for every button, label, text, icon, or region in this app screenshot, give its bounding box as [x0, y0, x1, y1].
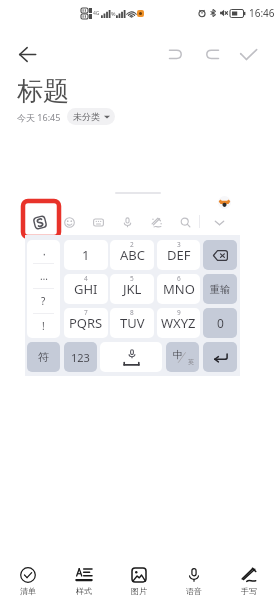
button[interactable]: Enter — [203, 342, 237, 372]
button[interactable]: Account avatar — [218, 196, 231, 209]
staticText: PQRS — [69, 314, 103, 332]
staticText: 1 — [82, 246, 90, 264]
button[interactable]: 123 — [64, 342, 97, 372]
staticText: 清单 — [20, 586, 36, 596]
button[interactable]: ， — [27, 240, 60, 263]
button[interactable]: 6 — [157, 274, 200, 304]
button[interactable]: 1 — [64, 240, 108, 270]
button[interactable]: … — [27, 264, 60, 288]
staticText: ? — [41, 294, 46, 308]
staticText: 未分类 — [73, 111, 100, 122]
button[interactable]: Handwriting — [145, 211, 167, 233]
button[interactable]: 4 — [64, 274, 108, 304]
button[interactable]: Done — [231, 37, 265, 71]
staticText: 6 — [177, 274, 181, 283]
staticText: 标题 — [17, 75, 69, 108]
staticText: ABC — [120, 246, 145, 264]
button[interactable]: Space — [100, 342, 162, 372]
staticText: 重输 — [210, 283, 230, 296]
staticText: 4 — [84, 274, 88, 283]
staticText: 123 — [71, 350, 90, 365]
staticText: TUV — [120, 314, 145, 332]
staticText: 语音 — [186, 586, 202, 596]
button[interactable]: Backspace — [203, 240, 237, 270]
staticText: ， — [39, 245, 49, 258]
staticText: 9 — [177, 308, 181, 317]
button[interactable]: 9 — [157, 308, 200, 338]
button[interactable]: 图片 — [111, 563, 166, 600]
button[interactable]: Input method — [29, 211, 51, 233]
button[interactable]: Emoji — [58, 211, 80, 233]
staticText: GHI — [74, 280, 98, 298]
button[interactable]: Collapse keyboard — [208, 211, 230, 233]
staticText: 0 — [217, 315, 224, 331]
button[interactable]: 未分类 — [67, 108, 115, 125]
staticText: 样式 — [76, 586, 92, 596]
staticText: 今天 16:45 — [17, 111, 61, 123]
button[interactable]: 8 — [110, 308, 154, 338]
staticText: 英 — [188, 358, 194, 366]
button[interactable]: 7 — [64, 308, 108, 338]
button[interactable]: Switch language — [166, 342, 199, 372]
button[interactable]: 清单 — [0, 563, 56, 600]
staticText: 手写 — [241, 586, 257, 596]
staticText: 16:46 — [249, 6, 275, 20]
staticText: JKL — [123, 280, 142, 298]
button[interactable]: 0 — [203, 308, 237, 338]
staticText: 3 — [177, 240, 181, 249]
button[interactable]: Undo — [158, 37, 192, 71]
staticText: 2 — [130, 240, 134, 249]
staticText: 5 — [130, 274, 134, 283]
staticText: DEF — [167, 246, 191, 264]
button[interactable]: 样式 — [56, 563, 111, 600]
staticText: 图片 — [131, 586, 147, 596]
button[interactable]: Redo — [195, 37, 229, 71]
button[interactable]: 手写 — [221, 563, 276, 600]
button[interactable]: 重输 — [203, 274, 237, 304]
button[interactable]: 符 — [27, 342, 60, 372]
button[interactable]: Back — [10, 37, 44, 71]
staticText: 7 — [84, 308, 88, 317]
staticText: … — [40, 269, 48, 283]
button[interactable]: 语音 — [166, 563, 221, 600]
button[interactable]: 3 — [157, 240, 200, 270]
staticText: MNO — [163, 280, 195, 298]
staticText: 8 — [130, 308, 134, 317]
staticText: WXYZ — [161, 314, 196, 332]
staticText: % — [111, 10, 116, 17]
staticText: ! — [42, 319, 45, 333]
button[interactable]: Keyboard — [87, 211, 109, 233]
button[interactable]: 2 — [110, 240, 154, 270]
button[interactable]: ? — [27, 289, 60, 313]
button[interactable]: 5 — [110, 274, 154, 304]
button[interactable]: Voice input — [116, 211, 138, 233]
button[interactable]: ! — [27, 314, 60, 338]
button[interactable]: Search — [174, 211, 196, 233]
staticText: 4G — [93, 10, 100, 17]
staticText: 中 — [173, 348, 183, 361]
staticText: 符 — [38, 350, 49, 364]
